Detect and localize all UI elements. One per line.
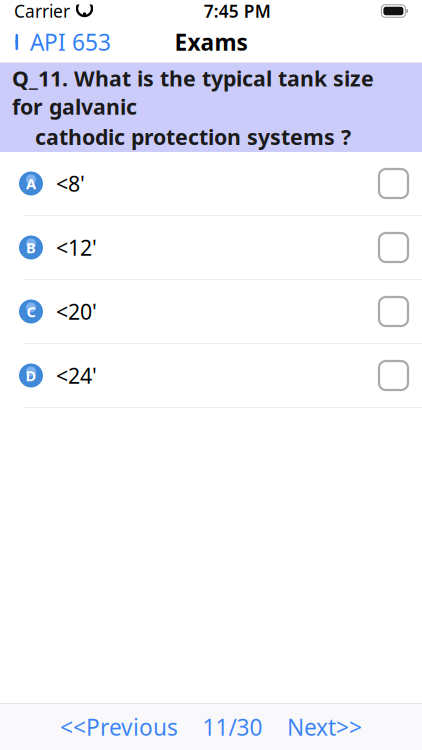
staticText: <12' bbox=[56, 233, 97, 262]
staticText: API 653 bbox=[30, 27, 111, 57]
button[interactable]: Option D: <24' bbox=[0, 344, 422, 408]
staticText: Next>> bbox=[287, 712, 362, 742]
staticText: cathodic protection systems ? bbox=[35, 123, 351, 151]
staticText: D bbox=[25, 366, 36, 385]
staticText: <<Previous bbox=[60, 712, 178, 742]
staticText: <20' bbox=[56, 297, 97, 326]
staticText: <8' bbox=[56, 169, 85, 198]
button[interactable]: Option A: <8' bbox=[0, 152, 422, 216]
button[interactable]: <<Previous bbox=[52, 702, 186, 750]
staticText: 11/30 bbox=[202, 712, 262, 742]
button[interactable]: Option C: <20' bbox=[0, 280, 422, 344]
staticText: Q_11. What is the typical tank size for … bbox=[12, 64, 374, 121]
staticText: B bbox=[26, 238, 36, 257]
button[interactable]: 11/30 bbox=[194, 702, 270, 750]
staticText: A bbox=[26, 174, 36, 193]
staticText: 7:45 PM bbox=[204, 0, 271, 22]
staticText: Exams bbox=[174, 27, 247, 57]
button[interactable]: Next>> bbox=[279, 702, 370, 750]
staticText: <24' bbox=[56, 361, 97, 390]
staticText: C bbox=[26, 302, 35, 321]
staticText: Carrier bbox=[14, 0, 70, 22]
button[interactable]: Option B: <12' bbox=[0, 216, 422, 280]
button[interactable]: API 653 bbox=[12, 21, 119, 63]
